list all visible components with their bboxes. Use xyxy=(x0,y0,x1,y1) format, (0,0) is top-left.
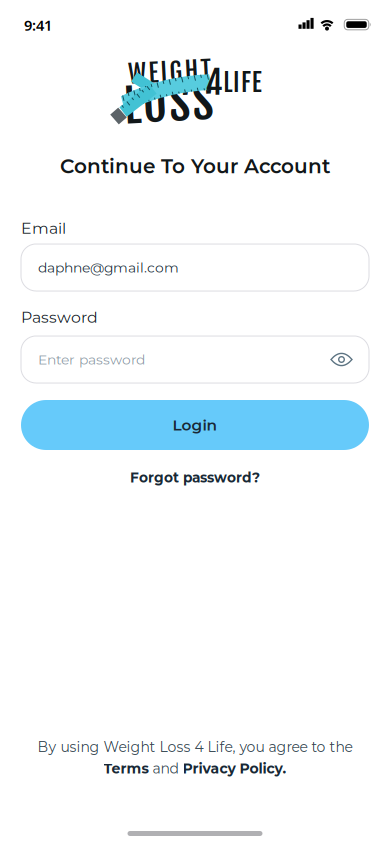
staticText: Enter password xyxy=(38,351,145,368)
staticText: Continue To Your Account xyxy=(60,154,330,178)
staticText: T xyxy=(201,56,212,88)
staticText: and xyxy=(148,760,182,777)
staticText: By using Weight Loss 4 Life, you agree t… xyxy=(37,738,352,756)
staticText: G xyxy=(170,56,183,88)
staticText: 9:41 xyxy=(24,15,52,35)
staticText: daphne@gmail.com xyxy=(38,259,179,276)
staticText: E xyxy=(252,67,262,98)
staticText: Privacy Policy. xyxy=(182,760,286,777)
staticText: 4 xyxy=(205,62,222,103)
button[interactable]: Show password xyxy=(331,352,352,366)
staticText: S xyxy=(169,75,190,133)
button[interactable]: Forgot password? xyxy=(130,469,260,486)
staticText: W xyxy=(128,56,146,88)
staticText: E xyxy=(148,56,158,88)
staticText: F xyxy=(241,67,251,98)
staticText: S xyxy=(192,75,213,133)
staticText: Forgot password? xyxy=(130,469,260,486)
button[interactable]: Privacy Policy. xyxy=(182,760,286,777)
button[interactable]: Terms xyxy=(103,760,148,777)
staticText: Login xyxy=(172,416,217,434)
staticText: L xyxy=(124,75,141,133)
staticText: Email xyxy=(21,218,66,238)
staticText: I xyxy=(233,67,240,98)
staticText: O xyxy=(143,75,167,133)
staticText: Terms xyxy=(103,760,148,777)
staticText: Password xyxy=(21,307,98,327)
staticText: I xyxy=(160,56,167,88)
button[interactable]: Login xyxy=(21,400,369,450)
staticText: L xyxy=(223,67,232,98)
staticText: H xyxy=(185,56,199,88)
